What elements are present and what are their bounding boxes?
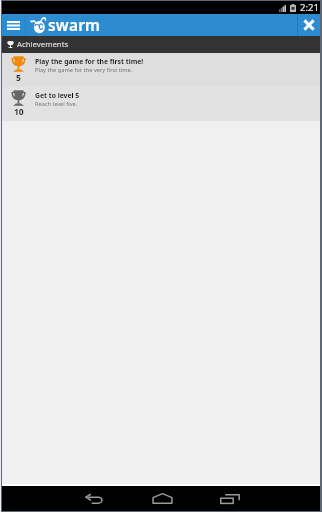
staticText: Play the game for the very first time. bbox=[35, 66, 133, 74]
button[interactable]: 5 bbox=[2, 53, 320, 87]
staticText: 2:21 bbox=[300, 1, 319, 14]
staticText: Reach level five. bbox=[35, 100, 78, 108]
staticText: swarm bbox=[48, 14, 101, 35]
staticText: Get to level 5 bbox=[35, 91, 80, 100]
button[interactable]: Open navigation menu bbox=[2, 14, 25, 36]
staticText: Play the game for the first time! bbox=[35, 57, 144, 66]
button[interactable]: 10 bbox=[2, 87, 320, 121]
button[interactable]: Recent apps bbox=[212, 486, 248, 511]
button[interactable]: Back bbox=[76, 486, 112, 511]
button[interactable]: Close bbox=[297, 14, 320, 36]
staticText: 5 bbox=[16, 72, 21, 84]
staticText: 10 bbox=[14, 106, 24, 118]
button[interactable]: Home bbox=[144, 486, 180, 511]
staticText: Achievements bbox=[17, 39, 69, 50]
